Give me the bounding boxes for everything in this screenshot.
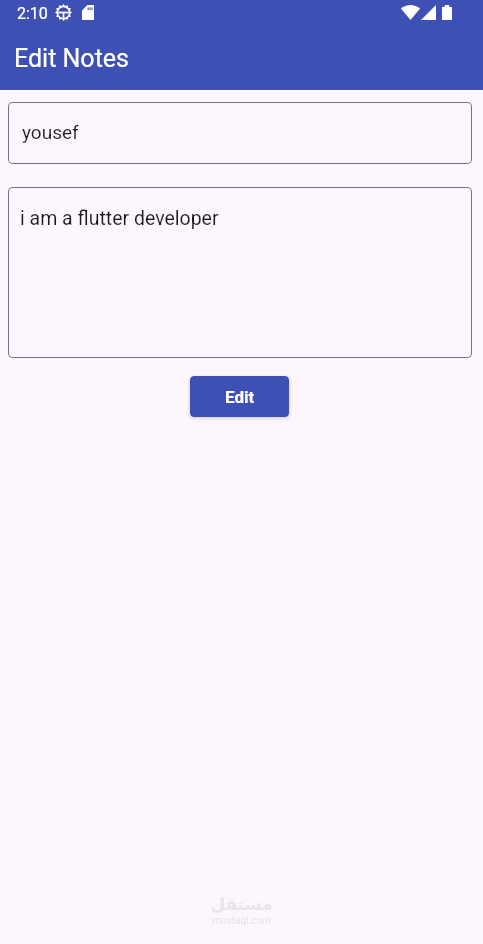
staticText: مستقل — [210, 894, 273, 914]
other: Wi-Fi — [401, 5, 420, 20]
button[interactable]: yousef — [8, 102, 472, 164]
other: Mobile signal — [421, 5, 436, 20]
button[interactable]: Edit — [190, 376, 289, 417]
other: SD card — [82, 5, 94, 20]
button[interactable]: i am a flutter developer — [8, 187, 472, 358]
staticText: yousef — [22, 121, 79, 143]
staticText: Edit — [225, 387, 255, 407]
other: Battery — [442, 5, 452, 20]
staticText: i am a flutter developer — [20, 207, 219, 230]
other: Developer options — [55, 4, 72, 21]
staticText: mostaql.com — [212, 915, 271, 927]
staticText: Edit Notes — [14, 44, 129, 73]
staticText: 2:10 — [17, 4, 48, 23]
